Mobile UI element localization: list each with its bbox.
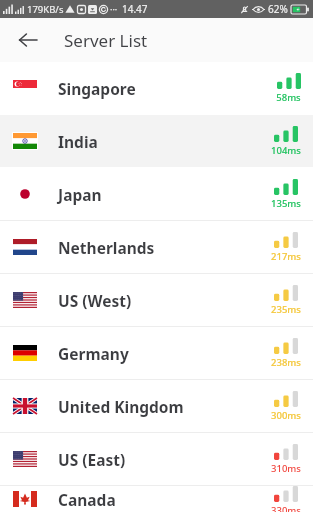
- staticText: United Kingdom: [58, 396, 184, 417]
- staticText: 330ms: [271, 504, 301, 512]
- staticText: Server List: [64, 29, 148, 52]
- staticText: US (East): [58, 449, 126, 470]
- button[interactable]: India: [0, 115, 313, 167]
- staticText: 14.47: [122, 2, 148, 16]
- button[interactable]: US (West): [0, 274, 313, 326]
- staticText: Singapore: [58, 78, 136, 99]
- button[interactable]: Japan: [0, 168, 313, 220]
- staticText: 58ms: [276, 91, 301, 104]
- staticText: 235ms: [271, 303, 301, 316]
- staticText: US (West): [58, 290, 132, 311]
- button[interactable]: Singapore: [0, 62, 313, 114]
- staticText: Netherlands: [58, 237, 155, 258]
- staticText: 62%: [268, 2, 288, 16]
- staticText: 238ms: [271, 356, 301, 369]
- button[interactable]: Back: [8, 20, 48, 60]
- button[interactable]: Germany: [0, 327, 313, 379]
- staticText: Japan: [58, 184, 102, 205]
- button[interactable]: Canada: [0, 486, 313, 512]
- staticText: 300ms: [271, 409, 301, 422]
- staticText: 135ms: [271, 197, 301, 210]
- staticText: 217ms: [271, 250, 301, 263]
- button[interactable]: US (East): [0, 433, 313, 485]
- staticText: Germany: [58, 343, 129, 364]
- button[interactable]: United Kingdom: [0, 380, 313, 432]
- staticText: 104ms: [271, 144, 301, 157]
- staticText: 310ms: [271, 462, 301, 475]
- staticText: India: [58, 131, 98, 152]
- staticText: ···: [110, 3, 118, 15]
- button[interactable]: Netherlands: [0, 221, 313, 273]
- staticText: Canada: [58, 489, 116, 510]
- staticText: 179KB/s: [27, 3, 64, 16]
